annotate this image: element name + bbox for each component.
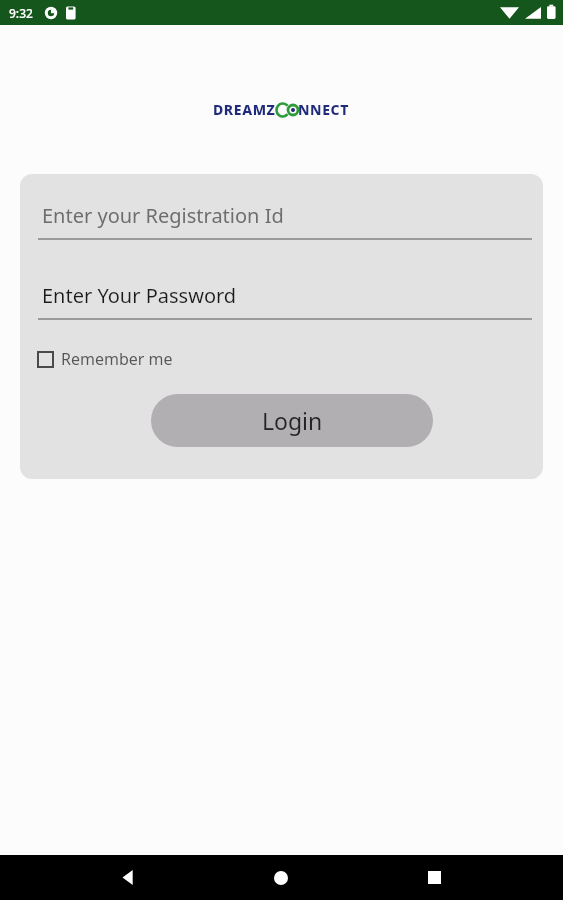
button[interactable]: Recent apps xyxy=(410,855,458,900)
button[interactable]: Enter your Registration Id xyxy=(38,202,532,240)
staticText: Enter Your Password xyxy=(42,282,237,309)
button[interactable]: Home xyxy=(257,855,305,900)
button[interactable]: Login xyxy=(151,394,433,447)
staticText: NNECT xyxy=(298,100,350,119)
button[interactable]: Back xyxy=(104,855,152,900)
staticText: Login xyxy=(262,405,323,436)
staticText: Remember me xyxy=(61,348,173,370)
staticText: 9:32 xyxy=(9,5,33,21)
staticText: DREAMZ xyxy=(213,100,276,119)
staticText: Enter your Registration Id xyxy=(42,202,284,229)
button[interactable]: Remember me xyxy=(38,346,179,372)
button[interactable]: Enter Your Password xyxy=(38,282,532,320)
